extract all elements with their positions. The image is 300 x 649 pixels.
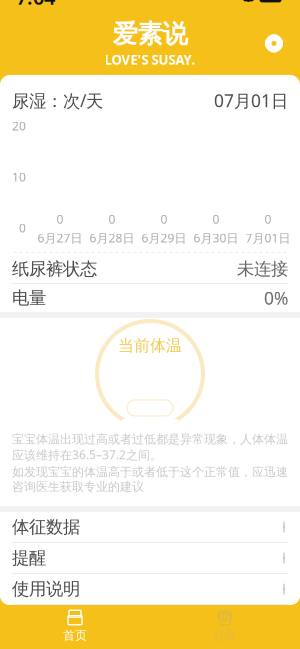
button[interactable]: 体征数据: [0, 512, 300, 542]
staticText: 爱素说: [112, 18, 187, 50]
staticText: 尿湿：次/天: [12, 89, 103, 112]
staticText: 0: [108, 211, 115, 227]
staticText: 纸尿裤状态: [12, 258, 97, 280]
staticText: 7:04: [16, 0, 55, 10]
staticText: 20: [12, 118, 26, 134]
staticText: 7月01日: [245, 230, 290, 246]
staticText: 社区: [213, 628, 237, 643]
staticText: 0: [212, 211, 219, 227]
staticText: 6月29日: [141, 230, 186, 246]
staticText: 未连接: [237, 258, 288, 280]
button[interactable]: 设置: [256, 25, 292, 61]
staticText: 0: [19, 220, 26, 236]
staticText: 6月30日: [193, 230, 238, 246]
staticText: LOVE'S SUSAY.: [104, 51, 195, 68]
staticText: 07月01日: [214, 89, 288, 112]
staticText: 提醒: [12, 547, 46, 569]
staticText: 0%: [264, 286, 288, 309]
button[interactable]: 首页: [0, 605, 150, 647]
staticText: 0: [264, 211, 271, 227]
staticText: 6月28日: [89, 230, 134, 246]
staticText: 体征数据: [12, 516, 80, 538]
staticText: 电量: [12, 287, 46, 309]
staticText: 6月27日: [37, 230, 82, 246]
staticText: 宝宝体温出现过高或者过低都是异常现象，人体体温应该维持在36.5–37.2之间。: [12, 432, 288, 463]
button[interactable]: 提醒: [0, 543, 300, 573]
staticText: 使用说明: [12, 578, 80, 600]
staticText: 0: [56, 211, 63, 227]
staticText: 0: [160, 211, 167, 227]
button[interactable]: 使用说明: [0, 574, 300, 604]
staticText: 首页: [63, 628, 87, 643]
staticText: 当前体温: [118, 336, 182, 356]
button[interactable]: 社区: [150, 605, 300, 647]
staticText: 10: [12, 169, 26, 185]
staticText: 如发现宝宝的体温高于或者低于这个正常值，应迅速咨询医生获取专业的建议: [12, 465, 288, 494]
